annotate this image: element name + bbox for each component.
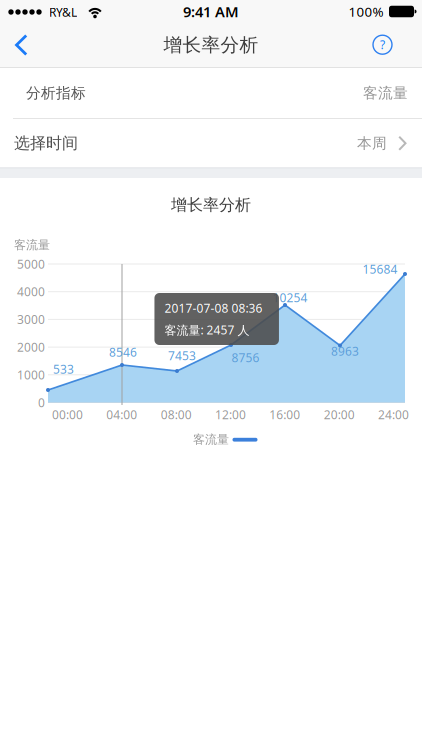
staticText: 10254 [272,289,307,305]
staticText: 15684 [362,261,397,277]
staticText: 16:00 [269,406,300,422]
staticText: 增长率分析 [171,195,251,215]
staticText: 04:00 [106,406,137,422]
staticText: 24:00 [378,406,409,422]
staticText: 客流量 [363,84,408,102]
staticText: 20:00 [324,406,355,422]
button[interactable]: Back [6,22,46,68]
staticText: 0 [38,394,45,410]
button[interactable]: 选择时间 [0,119,422,167]
staticText: 00:00 [52,406,83,422]
staticText: RY&L [49,4,77,20]
staticText: 增长率分析 [163,33,258,56]
button[interactable]: 分析指标 [0,68,422,118]
staticText: 2017-07-08 08:36 [164,300,262,316]
staticText: 客流量 [14,238,50,252]
staticText: 本周 [357,134,387,152]
staticText: 选择时间 [14,133,78,153]
staticText: 1000 [17,367,45,383]
staticText: 12:00 [215,406,246,422]
staticText: 08:00 [161,406,192,422]
staticText: 8546 [109,344,137,360]
staticText: 客流量 [193,432,229,447]
staticText: 7453 [168,347,196,363]
staticText: 5000 [17,256,45,272]
staticText: 客流量: 2457 人 [164,322,249,338]
staticText: 533 [53,361,74,377]
staticText: ? [380,37,385,53]
staticText: 8963 [331,343,359,359]
staticText: 100% [348,3,383,20]
staticText: 8756 [231,349,259,365]
staticText: 4000 [17,284,45,300]
staticText: 9:41 AM [183,2,239,21]
staticText: 2000 [17,339,45,355]
staticText: 3000 [17,311,45,327]
button[interactable]: Help [363,25,402,64]
staticText: 分析指标 [26,84,86,102]
